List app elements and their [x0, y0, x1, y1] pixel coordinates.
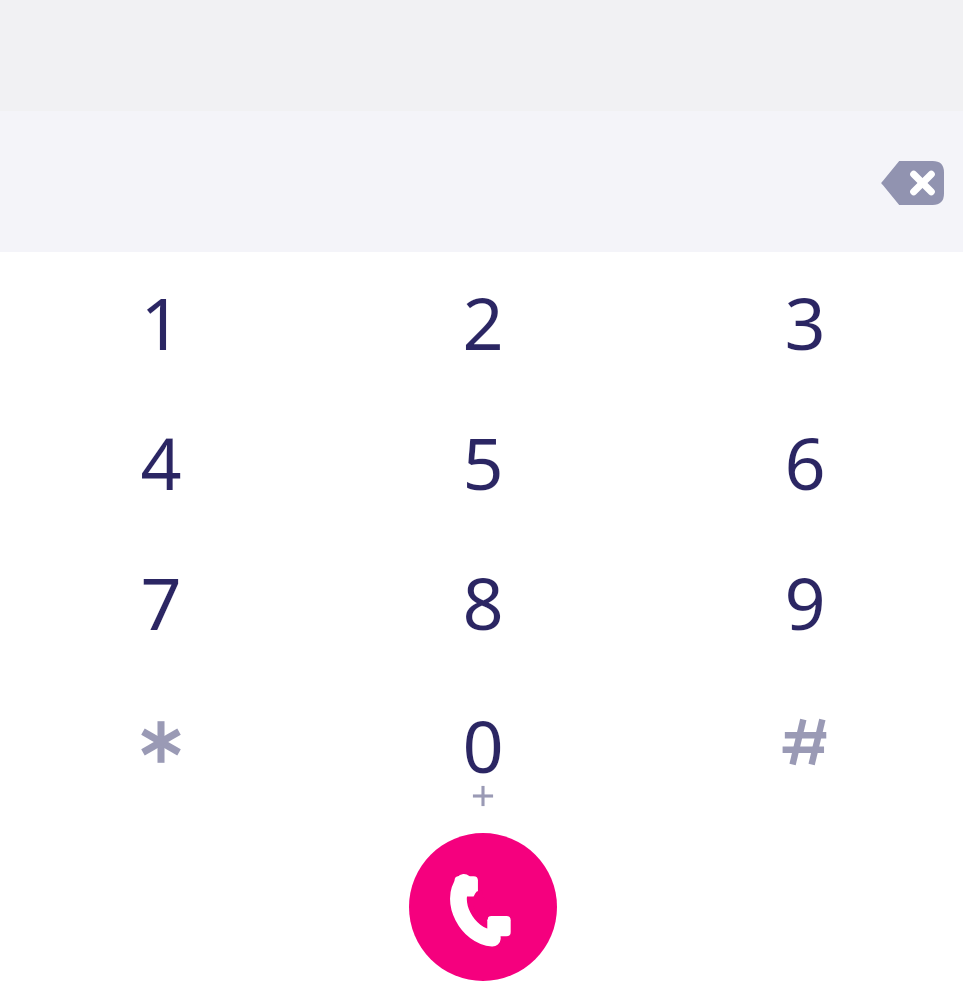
staticText: 9: [784, 553, 826, 651]
staticText: 0: [462, 696, 504, 794]
button[interactable]: Backspace: [864, 145, 960, 221]
button[interactable]: 3: [705, 257, 905, 387]
button[interactable]: [705, 677, 905, 807]
button[interactable]: Call: [409, 833, 557, 981]
staticText: 3: [784, 273, 826, 371]
button[interactable]: 5: [383, 397, 583, 527]
staticText: 5: [462, 413, 504, 511]
staticText: 4: [140, 413, 182, 511]
staticText: 8: [462, 553, 504, 651]
staticText: 2: [462, 273, 504, 371]
button[interactable]: 2: [383, 257, 583, 387]
button[interactable]: 9: [705, 537, 905, 667]
button[interactable]: 0: [383, 677, 583, 807]
button[interactable]: 7: [61, 537, 261, 667]
staticText: 6: [784, 413, 826, 511]
button[interactable]: 6: [705, 397, 905, 527]
button[interactable]: 4: [61, 397, 261, 527]
button[interactable]: 8: [383, 537, 583, 667]
staticText: 1: [140, 273, 182, 371]
button[interactable]: [61, 677, 261, 807]
staticText: 7: [140, 553, 182, 651]
button[interactable]: 1: [61, 257, 261, 387]
